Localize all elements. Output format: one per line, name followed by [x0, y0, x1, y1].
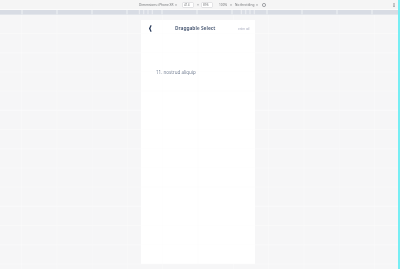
button[interactable]: Back [144, 22, 157, 35]
staticText: 414 [184, 3, 190, 7]
button[interactable]: Dimensions: iPhone XR [139, 3, 174, 7]
staticText: 11. nostrud aliquip [156, 69, 196, 75]
button[interactable]: More options [391, 2, 397, 8]
button[interactable]: Draggable Select [175, 25, 216, 32]
button[interactable]: 11. nostrud aliquip [141, 65, 255, 79]
button[interactable]: 414 [182, 2, 194, 8]
staticText: × [197, 2, 199, 7]
button[interactable]: No throttling [235, 3, 255, 7]
button[interactable]: Rotate device [260, 1, 267, 8]
button[interactable]: 896 [201, 2, 213, 8]
staticText: 896 [203, 3, 209, 7]
button[interactable]: enim ad [238, 27, 250, 31]
button[interactable]: 100% [219, 3, 228, 7]
